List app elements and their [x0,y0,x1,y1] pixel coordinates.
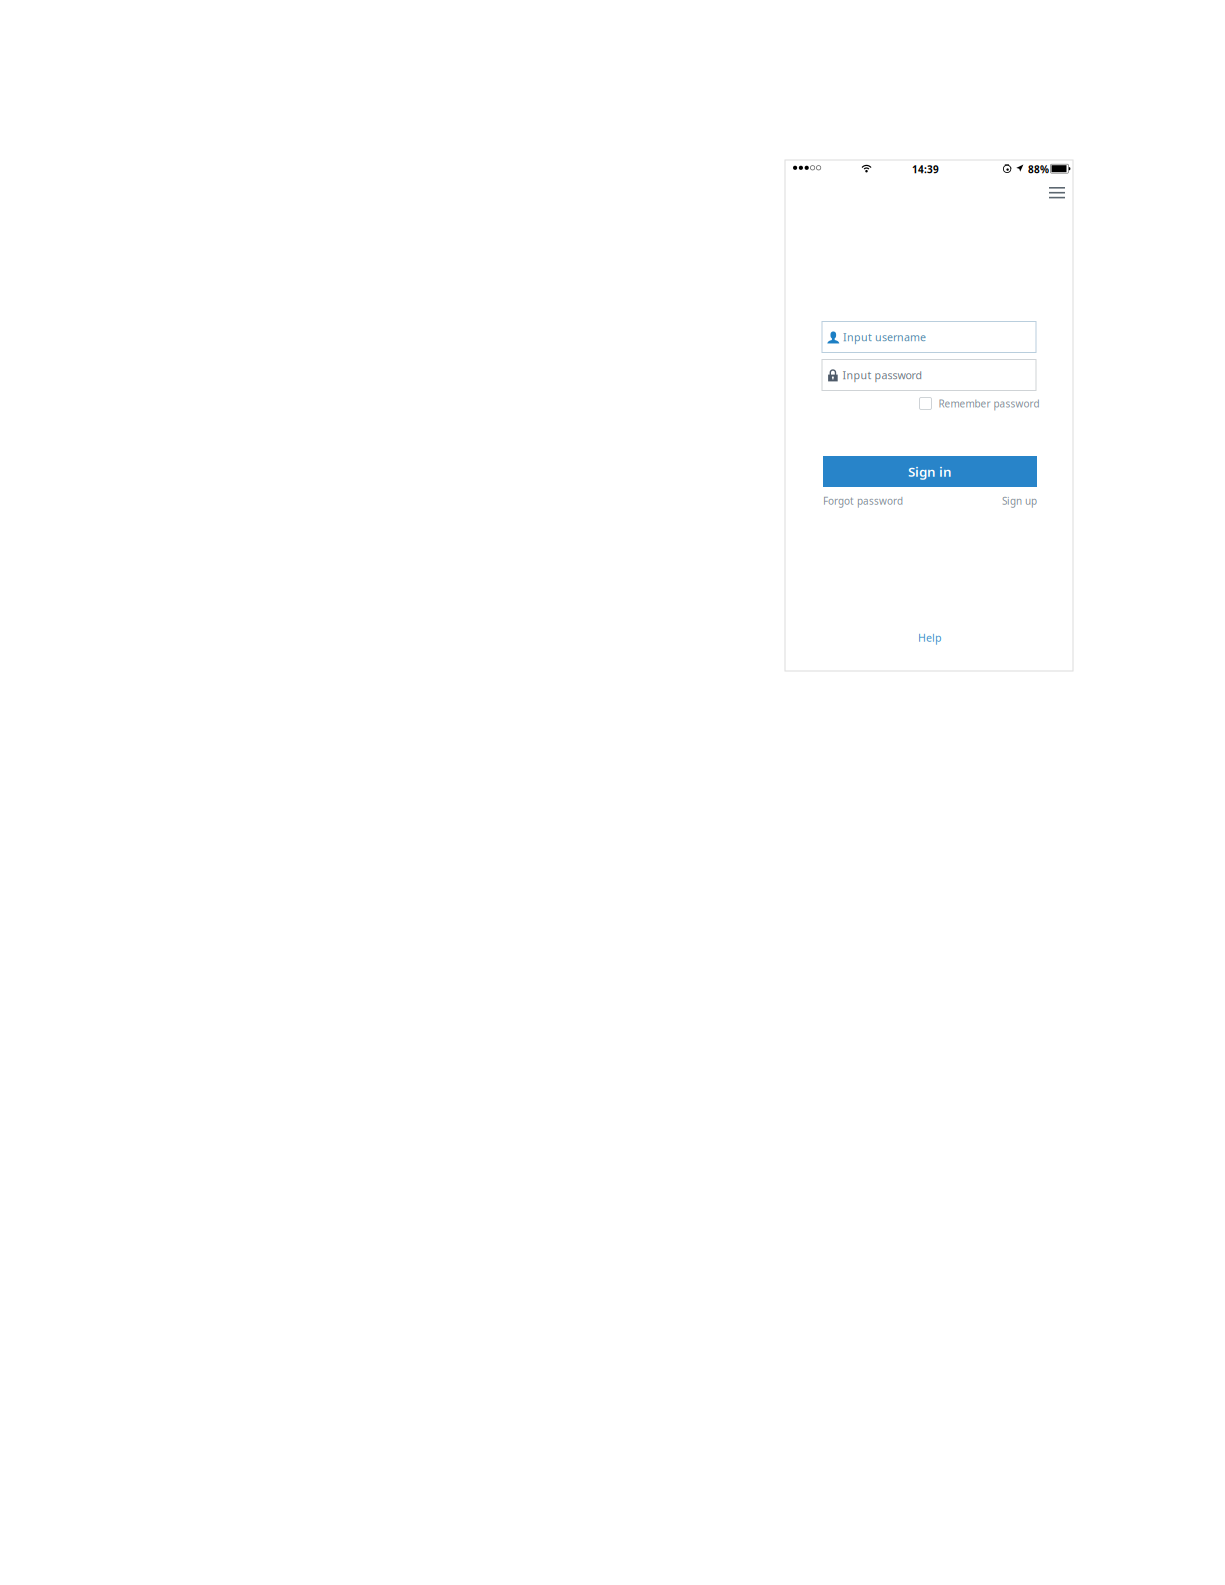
staticText: 88% [1028,163,1049,176]
staticText: Input password [842,368,922,382]
staticText: Sign in [908,462,952,481]
button[interactable]: Remember password [919,395,1039,411]
staticText: 14:39 [912,163,939,176]
button[interactable]: Help [900,629,960,645]
staticText: Sign up [1002,494,1037,508]
button[interactable]: Forgot password [823,494,903,508]
button[interactable]: Input password [822,359,1036,390]
button[interactable]: Input username [822,321,1036,352]
staticText: Help [918,630,942,645]
button[interactable]: Menu [1041,180,1071,208]
staticText: Input username [843,330,926,344]
button[interactable]: Sign up [1002,494,1037,508]
staticText: Forgot password [823,494,903,508]
button[interactable]: Sign in [823,456,1037,487]
staticText: Remember password [938,397,1039,410]
